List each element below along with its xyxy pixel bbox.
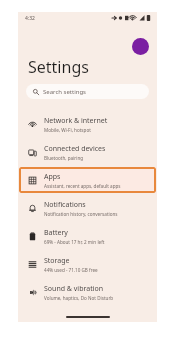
button[interactable]: Network & internet [18,110,157,138]
staticText: Notification history, conversations [44,211,118,217]
button[interactable]: Apps [19,167,156,193]
staticText: Notifications [44,200,86,210]
staticText: Network & internet [44,116,108,126]
staticText: Assistant, recent apps, default apps [44,183,121,189]
button[interactable]: Connected devices [18,138,157,166]
staticText: Settings [28,56,89,78]
staticText: 4:32 [25,15,35,22]
staticText: 69% - About 17 hr, 2 min left [44,239,105,245]
button[interactable]: Battery [18,222,157,250]
staticText: Storage [44,256,70,266]
staticText: Sound & vibration [44,284,104,294]
staticText: Battery [44,228,68,238]
staticText: 44% used - 71.10 GB free [44,267,98,273]
staticText: Search settings [43,88,86,96]
button[interactable]: Notifications [18,194,157,222]
staticText: Volume, haptics, Do Not Disturb [44,295,114,301]
staticText: Mobile, Wi-Fi, hotspot [44,127,91,133]
staticText: Apps [44,172,61,182]
staticText: Connected devices [44,144,106,154]
button[interactable]: Account [132,38,149,55]
button[interactable]: Storage [18,250,157,278]
button[interactable]: Sound & vibration [18,278,157,306]
staticText: Bluetooth, pairing [44,155,84,161]
button[interactable]: Search settings [26,84,149,99]
